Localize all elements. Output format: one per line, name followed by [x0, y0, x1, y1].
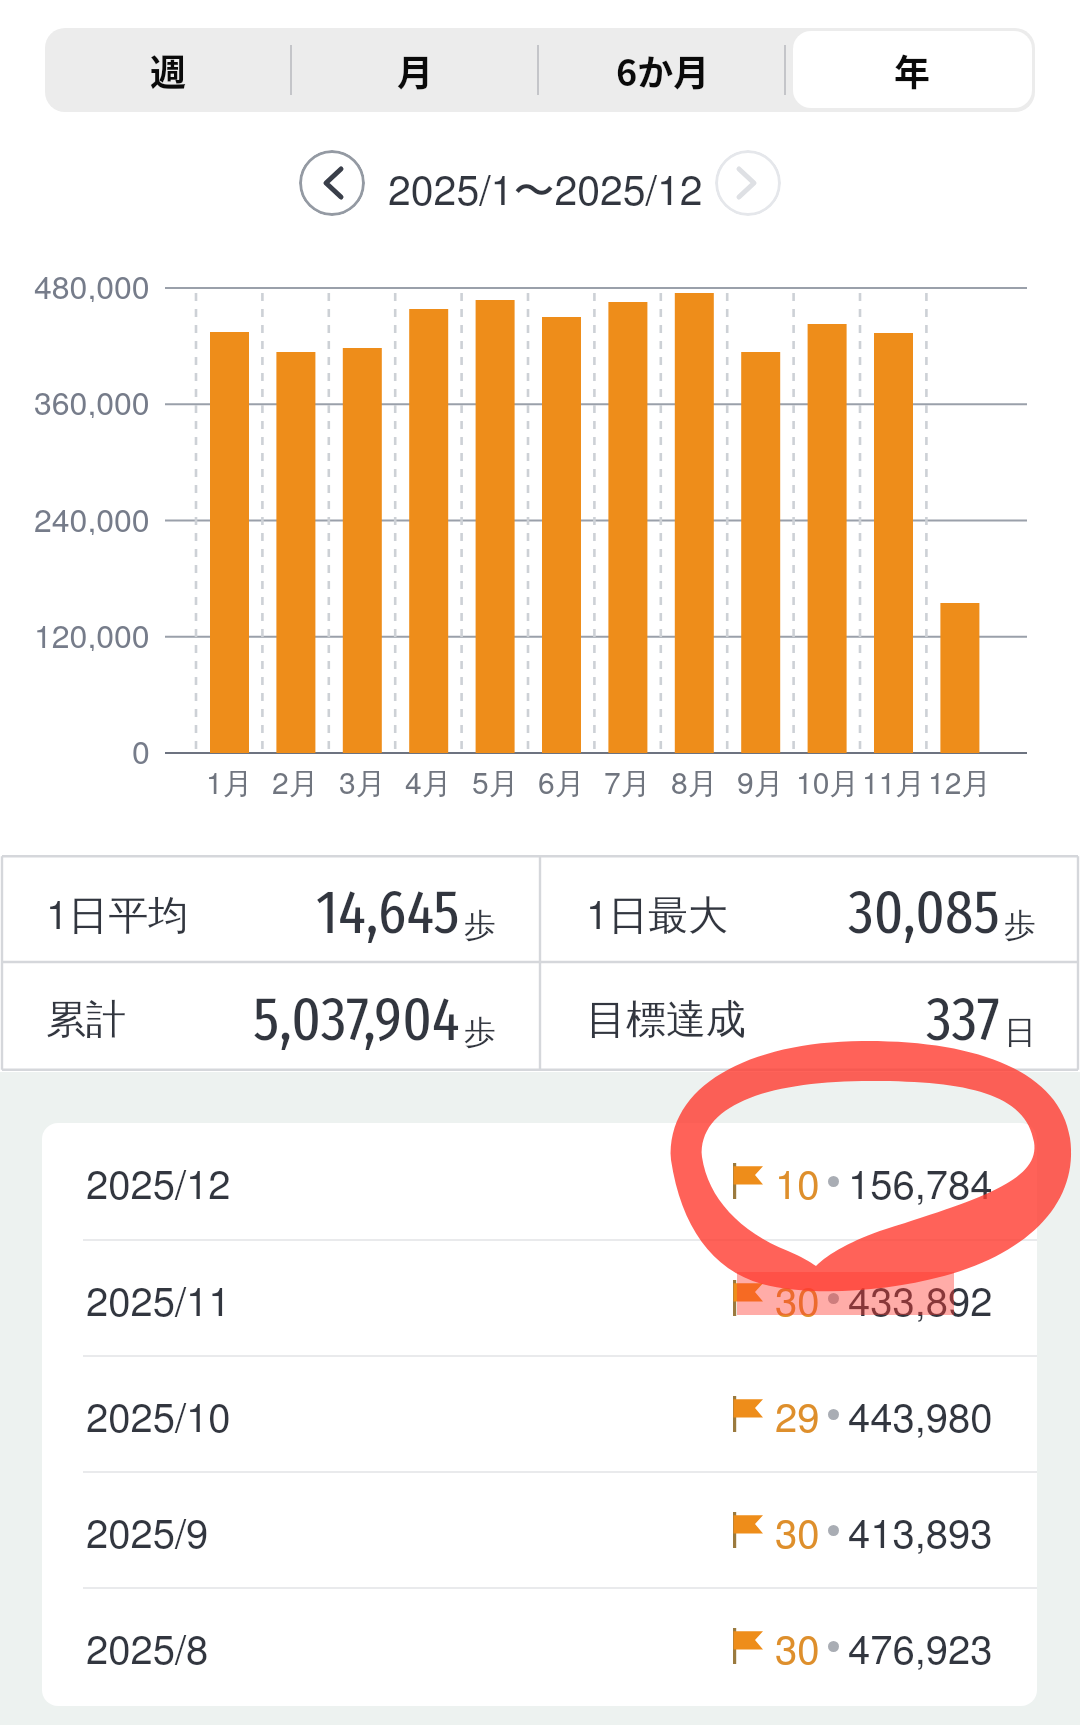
staticText: 413,893 [848, 1502, 993, 1559]
staticText: 30 [775, 1270, 820, 1327]
staticText: 120,000 [34, 611, 150, 651]
button[interactable]: 6か月 [539, 28, 786, 112]
staticText: 5,037,904 [253, 982, 460, 1056]
button[interactable]: 2025/11 [42, 1241, 1037, 1355]
staticText: 1日最大 [586, 883, 729, 941]
staticText: 30 [775, 1502, 820, 1559]
staticText: 30 [775, 1618, 820, 1675]
staticText: 2025/10 [86, 1386, 231, 1443]
staticText: 5月 [472, 760, 519, 803]
staticText: 3月 [339, 760, 386, 803]
staticText: 2025/12 [86, 1153, 231, 1210]
button[interactable]: Previous period [299, 150, 365, 216]
button[interactable]: Next period [715, 150, 781, 216]
staticText: 累計 [46, 994, 126, 1044]
staticText: 30,085 [848, 875, 1000, 949]
staticText: 360,000 [34, 378, 150, 418]
staticText: 11月 [862, 760, 926, 803]
staticText: 2025/9 [86, 1502, 209, 1559]
staticText: 目標達成 [586, 994, 746, 1044]
staticText: 週 [150, 44, 187, 96]
staticText: 1月 [206, 760, 253, 803]
staticText: 日 [1004, 1012, 1036, 1052]
button[interactable]: 2025/12 [42, 1123, 1037, 1239]
staticText: 476,923 [848, 1618, 993, 1675]
staticText: 8月 [671, 760, 718, 803]
staticText: 240,000 [34, 495, 150, 535]
button[interactable]: 2025/8 [42, 1589, 1037, 1703]
staticText: 433,892 [848, 1270, 993, 1327]
staticText: 12月 [928, 760, 992, 803]
staticText: 29 [775, 1386, 820, 1443]
staticText: 2025/11 [86, 1270, 231, 1327]
staticText: 480,000 [34, 262, 150, 302]
staticText: 14,645 [316, 875, 460, 949]
staticText: 337 [926, 982, 1000, 1056]
staticText: 月 [397, 44, 434, 96]
button[interactable]: 2025/10 [42, 1357, 1037, 1471]
staticText: 2025/1〜2025/12 [388, 158, 703, 217]
staticText: 10月 [796, 760, 860, 803]
staticText: 156,784 [848, 1153, 993, 1210]
button[interactable]: 2025/9 [42, 1473, 1037, 1587]
button[interactable]: 月 [292, 28, 539, 112]
staticText: 2月 [272, 760, 319, 803]
button[interactable]: 週 [45, 28, 292, 112]
staticText: 歩 [464, 905, 496, 945]
staticText: 4月 [405, 760, 452, 803]
staticText: 0 [132, 727, 150, 767]
staticText: 2025/8 [86, 1618, 209, 1675]
staticText: 6月 [538, 760, 585, 803]
button[interactable]: 年 [793, 31, 1032, 108]
staticText: 1日平均 [46, 883, 189, 941]
staticText: 6か月 [616, 44, 710, 96]
staticText: 歩 [464, 1012, 496, 1052]
staticText: 443,980 [848, 1386, 993, 1443]
staticText: 9月 [737, 760, 784, 803]
staticText: 10 [775, 1153, 820, 1210]
staticText: 7月 [604, 760, 651, 803]
staticText: 歩 [1004, 905, 1036, 945]
staticText: 年 [894, 44, 931, 96]
